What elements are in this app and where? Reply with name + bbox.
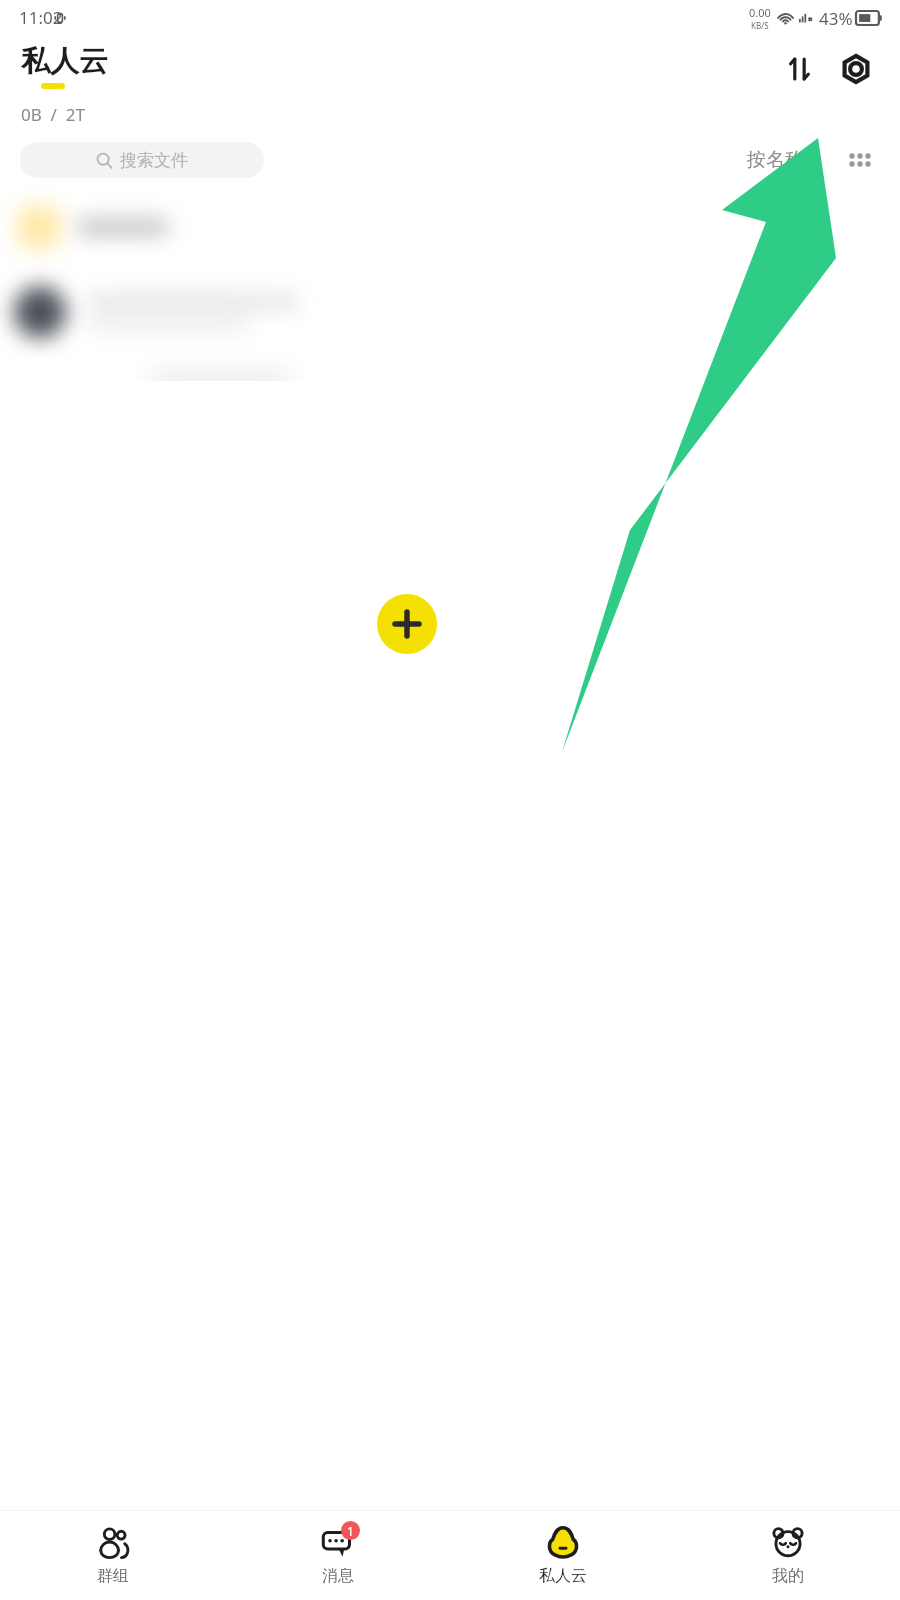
button[interactable]: 我的 bbox=[675, 1511, 900, 1600]
staticText: 1 bbox=[347, 1523, 354, 1539]
button[interactable]: 私人云 bbox=[450, 1511, 675, 1600]
button[interactable]: 群组 bbox=[0, 1511, 225, 1600]
staticText: 我的 bbox=[772, 1566, 804, 1586]
button[interactable]: Grid view bbox=[840, 140, 880, 180]
button[interactable]: Settings bbox=[834, 47, 878, 91]
staticText: 群组 bbox=[97, 1566, 129, 1586]
staticText: 消息 bbox=[322, 1566, 354, 1586]
button[interactable]: 搜索文件 bbox=[20, 142, 264, 178]
staticText: KB/S bbox=[751, 20, 769, 31]
staticText: 私人云 bbox=[21, 43, 108, 80]
staticText: 0.00 bbox=[749, 5, 771, 20]
button[interactable]: Sort bbox=[778, 47, 822, 91]
button[interactable]: 1 bbox=[225, 1511, 450, 1600]
staticText: 11:02 bbox=[19, 6, 63, 29]
staticText: 0B / 2T bbox=[21, 103, 85, 126]
staticText: 按名称 bbox=[747, 148, 804, 172]
staticText: 43% bbox=[819, 7, 853, 30]
staticText: 私人云 bbox=[539, 1566, 587, 1586]
button[interactable]: Add bbox=[377, 594, 437, 654]
button[interactable]: 按名称 bbox=[743, 142, 808, 178]
staticText: 搜索文件 bbox=[120, 150, 188, 171]
